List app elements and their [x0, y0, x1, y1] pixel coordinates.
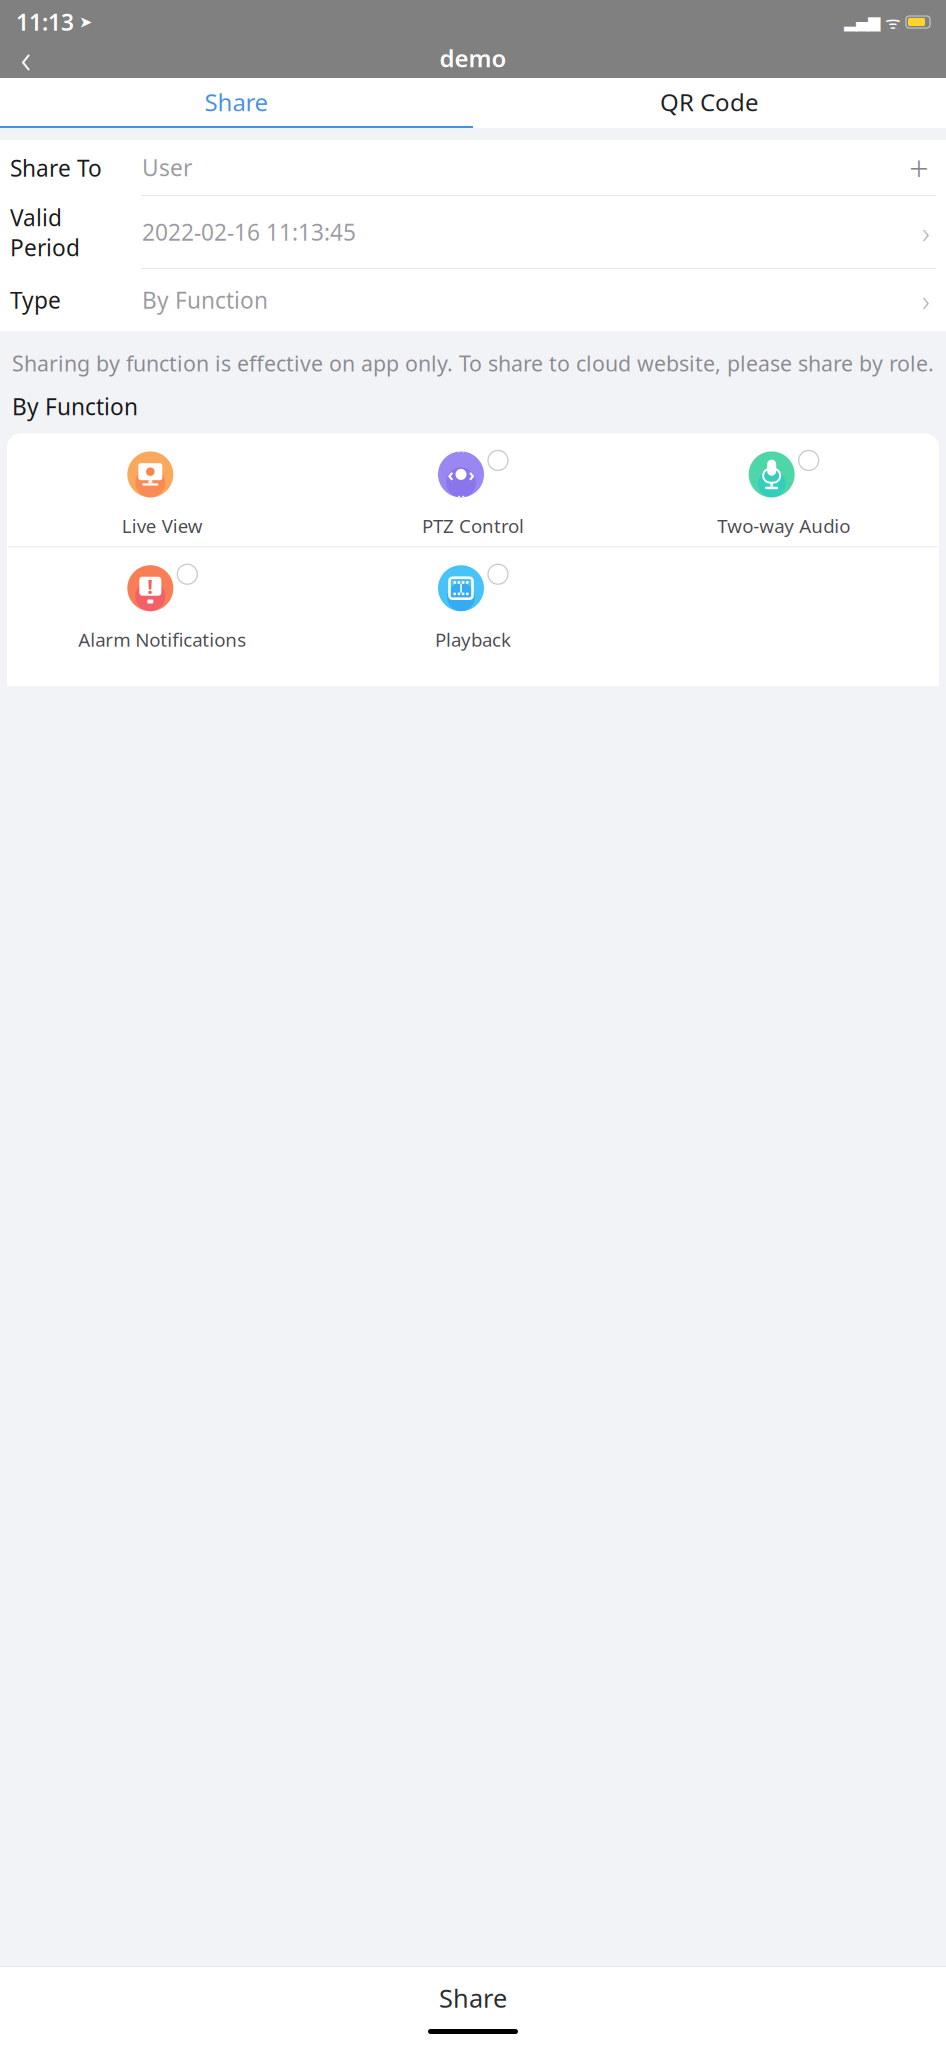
staticText: ! — [147, 573, 153, 599]
button[interactable]: ! — [7, 563, 318, 652]
staticText: › — [922, 212, 930, 251]
button[interactable]: Back — [4, 36, 48, 80]
button[interactable]: Valid Period — [0, 196, 946, 269]
button[interactable]: Two-way Audio — [628, 449, 939, 538]
staticText: + — [909, 144, 929, 190]
staticText: By Function — [142, 285, 268, 315]
staticText: PTZ Control — [422, 513, 524, 538]
staticText: Alarm Notifications — [78, 627, 246, 652]
staticText: Two-way Audio — [717, 513, 850, 538]
staticText: ▂▄▆ — [844, 13, 880, 31]
staticText: Share To — [10, 153, 102, 183]
staticText: demo — [439, 42, 506, 74]
staticText: 11:13 — [16, 7, 74, 37]
staticText: ‹ — [20, 31, 31, 84]
staticText: ⌃ — [455, 446, 467, 463]
staticText: QR Code — [660, 86, 759, 118]
staticText: ➤ — [74, 13, 92, 31]
button[interactable]: Type — [0, 269, 946, 331]
staticText: › — [922, 280, 930, 319]
button[interactable]: QR Code — [473, 78, 946, 126]
button[interactable]: Share — [0, 1967, 946, 2029]
staticText: User — [142, 152, 192, 182]
staticText: Playback — [435, 627, 511, 652]
button[interactable]: Playback — [318, 563, 628, 652]
staticText: ᯤ — [880, 10, 906, 33]
staticText: Type — [10, 285, 61, 315]
staticText: 2022-02-16 11:13:45 — [142, 217, 356, 247]
staticText: Valid Period — [10, 202, 80, 263]
staticText: Sharing by function is effective on app … — [12, 349, 934, 377]
staticText: ‹ — [447, 463, 453, 486]
button[interactable]: Live View — [7, 449, 318, 538]
staticText: By Function — [12, 391, 138, 421]
button[interactable]: Add user — [902, 150, 936, 184]
staticText: Share — [204, 86, 268, 118]
staticText: Live View — [122, 513, 203, 538]
staticText: ⌄ — [455, 486, 467, 502]
staticText: › — [468, 463, 474, 486]
button[interactable]: Share — [0, 78, 473, 126]
staticText: Share — [439, 1981, 507, 2015]
button[interactable]: ⌃ — [318, 449, 628, 538]
